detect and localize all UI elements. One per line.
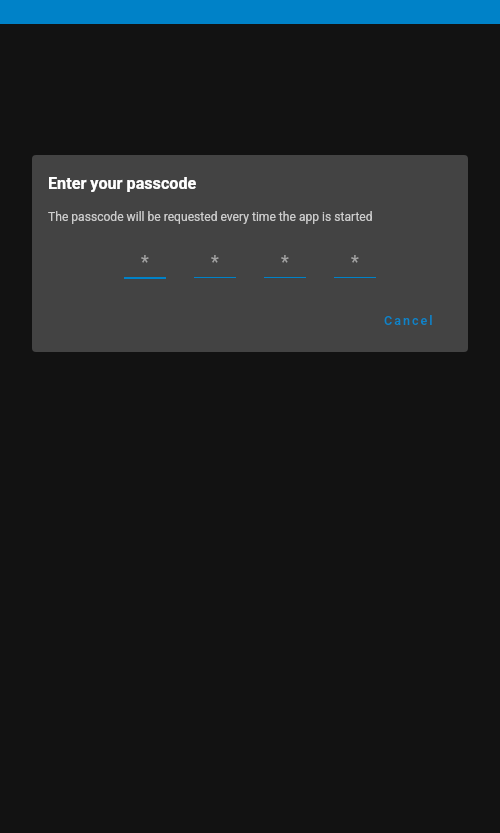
button[interactable]: Cancel — [370, 305, 449, 336]
button[interactable]: Passcode digit 4 — [334, 251, 376, 279]
button[interactable]: Passcode digit 1 — [124, 251, 166, 279]
staticText: Enter your passcode — [48, 174, 197, 193]
button[interactable]: Passcode digit 3 — [264, 251, 306, 279]
staticText: The passcode will be requested every tim… — [48, 210, 373, 224]
staticText: * — [211, 251, 219, 272]
staticText: * — [281, 251, 289, 272]
button[interactable]: Passcode digit 2 — [194, 251, 236, 279]
staticText: Cancel — [384, 313, 435, 328]
staticText: * — [141, 251, 149, 272]
staticText: * — [351, 251, 359, 272]
